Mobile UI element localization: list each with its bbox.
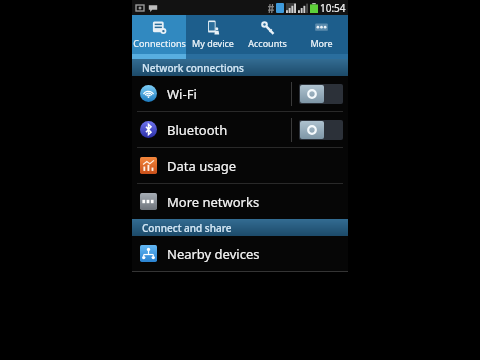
button[interactable]: My device xyxy=(186,15,240,54)
button[interactable]: Toggle off xyxy=(299,84,343,104)
staticText: Wi-Fi xyxy=(167,85,291,103)
staticText: Connections xyxy=(133,37,186,49)
button[interactable]: Nearby devices xyxy=(132,236,348,271)
button[interactable]: More networks xyxy=(132,184,348,219)
button[interactable]: Accounts xyxy=(240,15,294,54)
staticText: Bluetooth xyxy=(167,121,291,139)
staticText: Accounts xyxy=(248,37,287,49)
staticText: Data usage xyxy=(167,157,343,175)
staticText: More networks xyxy=(167,193,343,211)
staticText: Connect and share xyxy=(142,221,232,235)
button[interactable]: Data usage xyxy=(132,148,348,183)
staticText: Network connections xyxy=(142,61,244,75)
staticText: 10:54 xyxy=(320,1,346,15)
staticText: More xyxy=(310,37,333,49)
button[interactable]: Toggle off xyxy=(299,120,343,140)
staticText: My device xyxy=(192,37,234,49)
button[interactable]: Bluetooth xyxy=(132,112,348,147)
staticText: Nearby devices xyxy=(167,245,343,263)
button[interactable]: Connections xyxy=(132,15,186,54)
button[interactable]: More xyxy=(294,15,348,54)
button[interactable]: Wi-Fi xyxy=(132,76,348,111)
